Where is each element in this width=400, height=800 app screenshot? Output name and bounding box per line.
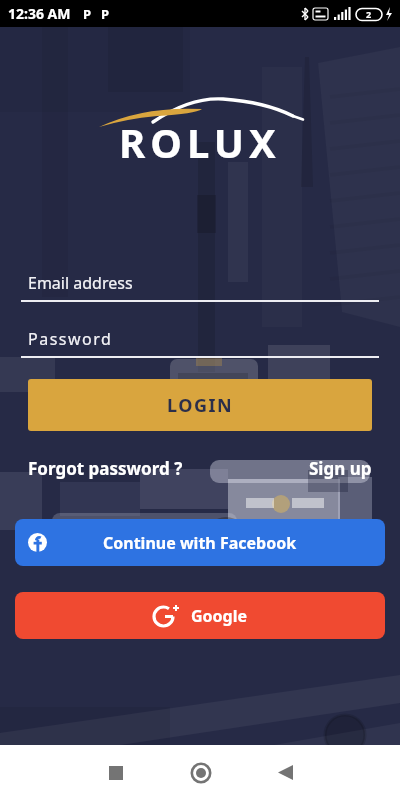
- button[interactable]: Forgot password ?: [28, 457, 183, 480]
- staticText: P: [83, 5, 92, 23]
- button[interactable]: [173, 745, 228, 800]
- staticText: 12:36 AM: [8, 4, 71, 23]
- button[interactable]: Sign up: [309, 457, 372, 480]
- button[interactable]: [258, 745, 313, 800]
- staticText: Continue with Facebook: [103, 532, 297, 554]
- staticText: Email address: [28, 272, 133, 294]
- button[interactable]: Continue with Facebook: [15, 519, 385, 566]
- staticText: LOGIN: [167, 393, 234, 418]
- button[interactable]: Password: [0, 328, 400, 358]
- button[interactable]: [88, 745, 143, 800]
- staticText: P: [101, 5, 110, 23]
- staticText: Password: [28, 328, 113, 350]
- staticText: Google: [191, 605, 248, 627]
- staticText: 2: [366, 8, 372, 20]
- staticText: ROLUX: [119, 115, 281, 169]
- button[interactable]: LOGIN: [28, 379, 372, 431]
- button[interactable]: Google: [15, 592, 385, 639]
- button[interactable]: Email address: [0, 272, 400, 302]
